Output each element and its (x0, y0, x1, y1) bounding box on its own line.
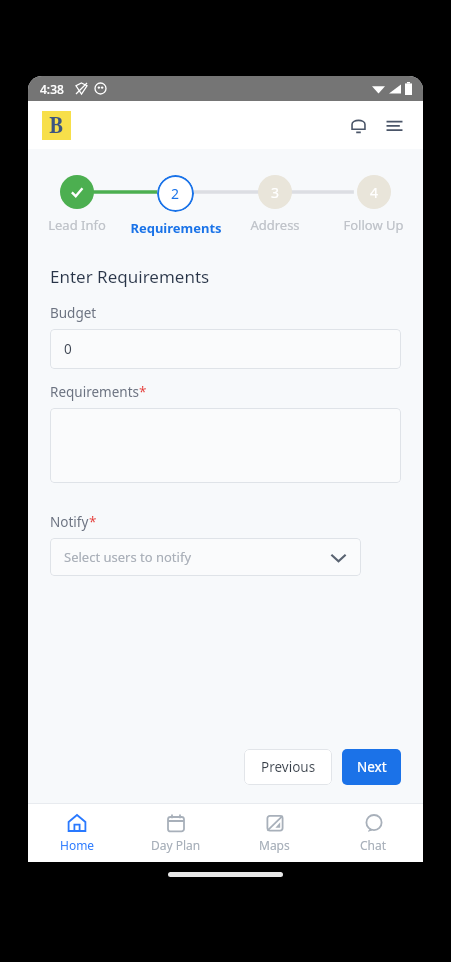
staticText: 4:38 (40, 81, 64, 97)
staticText: Home (60, 837, 95, 853)
staticText: Notify (50, 513, 89, 531)
button[interactable]: Chat (324, 804, 423, 862)
staticText: Address (250, 216, 300, 234)
button[interactable]: Notifications (343, 110, 373, 140)
staticText: Requirements (130, 219, 222, 237)
staticText: Chat (360, 837, 387, 853)
staticText: * (89, 513, 97, 531)
button[interactable]: 0 (50, 329, 401, 369)
staticText: Enter Requirements (50, 265, 210, 288)
staticText: Follow Up (343, 216, 404, 234)
staticText: Select users to notify (64, 548, 192, 566)
staticText: Requirements (50, 383, 139, 401)
button[interactable]: Logo (42, 111, 71, 140)
button[interactable]: Menu (379, 110, 409, 140)
staticText: 4 (370, 183, 379, 202)
staticText: Day Plan (151, 837, 201, 853)
staticText: 0 (64, 340, 72, 358)
staticText: 3 (271, 183, 280, 202)
staticText: Lead Info (48, 216, 106, 234)
staticText: 2 (171, 184, 180, 203)
button[interactable]: Day Plan (126, 804, 225, 862)
staticText: B (49, 111, 64, 140)
staticText: Budget (50, 304, 97, 322)
staticText: Previous (261, 758, 316, 776)
button[interactable]: Next (342, 749, 401, 785)
button[interactable]: Maps (225, 804, 324, 862)
button[interactable] (50, 408, 401, 483)
button[interactable]: Select users to notify (50, 538, 361, 576)
button[interactable]: Previous (244, 749, 332, 785)
button[interactable]: 2 (126, 167, 225, 237)
button[interactable]: 4 (324, 167, 423, 234)
button[interactable]: 3 (225, 167, 324, 234)
button[interactable]: Home (28, 804, 126, 862)
button[interactable]: Lead Info (28, 167, 126, 234)
staticText: Maps (259, 837, 290, 853)
staticText: * (139, 383, 147, 401)
staticText: Next (357, 758, 387, 776)
